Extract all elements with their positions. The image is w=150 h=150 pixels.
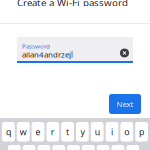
staticText: o	[124, 126, 129, 138]
button[interactable]: y	[76, 122, 89, 141]
staticText: r	[51, 126, 55, 138]
staticText: q	[6, 126, 11, 138]
staticText: Create a Wi-Fi password	[17, 0, 128, 9]
staticText: u	[95, 126, 100, 138]
button[interactable]: s	[23, 145, 35, 150]
staticText: y	[80, 126, 84, 138]
button[interactable]: o	[120, 122, 133, 141]
button[interactable]: j	[97, 145, 109, 150]
button[interactable]: g	[67, 145, 80, 150]
button[interactable]: q	[2, 122, 15, 141]
staticText: p	[139, 126, 144, 138]
staticText: i	[111, 126, 113, 138]
staticText: allan4andrzej	[22, 49, 71, 60]
button[interactable]: k	[111, 145, 124, 150]
button[interactable]: r	[46, 122, 59, 141]
staticText: t	[66, 126, 69, 138]
button[interactable]: d	[37, 145, 50, 150]
button[interactable]: u	[91, 122, 104, 141]
button[interactable]: i	[106, 122, 118, 141]
staticText: Next	[116, 99, 133, 109]
staticText: w	[20, 126, 27, 138]
button[interactable]: h	[82, 145, 95, 150]
button[interactable]: Next	[109, 94, 141, 114]
button[interactable]: a	[8, 145, 21, 150]
button[interactable]: e	[32, 122, 44, 141]
button[interactable]: l	[126, 145, 139, 150]
button[interactable]: f	[52, 145, 65, 150]
staticText: Password	[22, 42, 50, 50]
staticText: e	[35, 126, 40, 138]
button[interactable]: t	[61, 122, 74, 141]
button[interactable]: p	[135, 122, 148, 141]
button[interactable]: w	[17, 122, 30, 141]
